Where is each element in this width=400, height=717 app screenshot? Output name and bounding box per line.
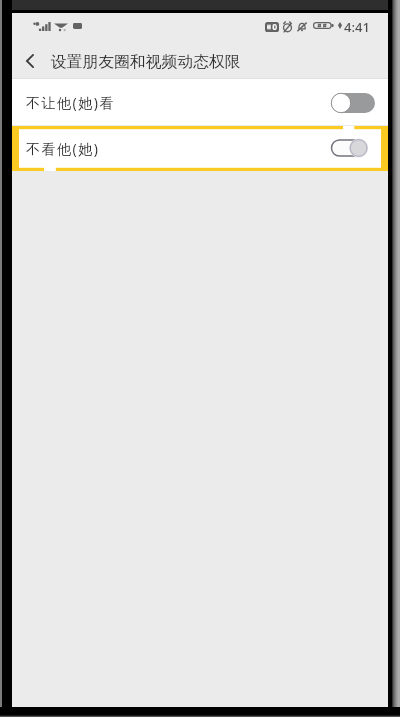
staticText: 不让他(她)看 bbox=[26, 93, 115, 112]
button[interactable]: 不让他(她)看 开关 关闭 bbox=[331, 93, 375, 113]
button[interactable]: 返回 bbox=[13, 44, 47, 78]
staticText: 4:41 bbox=[344, 18, 370, 36]
button[interactable]: 不看他(她) 开关 开启 bbox=[330, 137, 374, 159]
staticText: 不看他(她) bbox=[26, 139, 100, 158]
button[interactable]: 不让他(她)看 bbox=[12, 79, 388, 125]
staticText: 设置朋友圈和视频动态权限 bbox=[51, 52, 241, 72]
button[interactable]: 不看他(她) bbox=[12, 126, 388, 171]
